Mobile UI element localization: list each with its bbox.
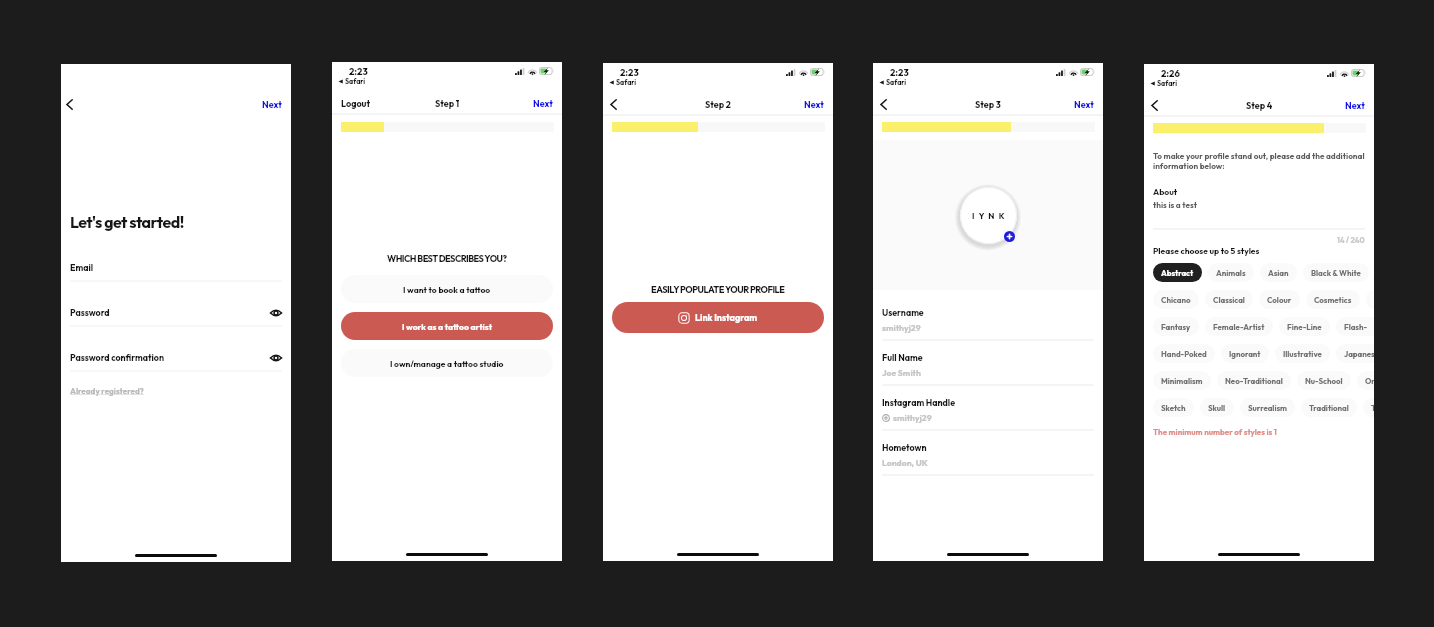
staticText: Japanes xyxy=(1344,349,1374,359)
staticText: this is a test xyxy=(1153,200,1197,210)
staticText: Animals xyxy=(1216,268,1246,278)
button[interactable]: Japanes xyxy=(1336,344,1374,363)
staticText: Safari xyxy=(616,78,637,87)
staticText: About xyxy=(1153,186,1178,197)
button[interactable]: Skull xyxy=(1200,398,1234,417)
button[interactable]: Back xyxy=(1144,97,1162,114)
staticText: Neo-Traditional xyxy=(1225,376,1283,386)
button[interactable]: Illustrative xyxy=(1275,344,1330,363)
staticText: Safari xyxy=(345,77,366,86)
button[interactable]: Flash-Sh xyxy=(1336,317,1374,336)
staticText: Asian xyxy=(1268,268,1289,278)
staticText: Safari xyxy=(886,78,907,87)
button[interactable]: Link Instagram xyxy=(612,302,824,333)
button[interactable]: I work as a tattoo artist xyxy=(341,312,553,340)
staticText: Flash-Sh xyxy=(1344,322,1374,332)
staticText: Nu-School xyxy=(1305,376,1343,386)
button[interactable]: Or xyxy=(1357,371,1374,390)
staticText: Ignorant xyxy=(1229,349,1261,359)
button[interactable]: Asian xyxy=(1260,263,1297,282)
staticText: Or xyxy=(1365,376,1374,386)
button[interactable]: Animals xyxy=(1208,263,1254,282)
button[interactable]: Surrealism xyxy=(1240,398,1295,417)
staticText: Username xyxy=(882,307,924,318)
button[interactable]: Female-Artist xyxy=(1205,317,1273,336)
button[interactable]: Show password xyxy=(270,354,282,362)
button[interactable]: Already registered? xyxy=(70,386,144,396)
button[interactable]: I want to book a tattoo xyxy=(341,275,553,303)
staticText: Minimalism xyxy=(1161,376,1203,386)
staticText: Instagram Handle xyxy=(882,397,955,408)
button[interactable]: Black & White xyxy=(1303,263,1369,282)
button[interactable]: Back xyxy=(603,96,621,113)
button[interactable]: Chicano xyxy=(1153,290,1199,309)
button[interactable]: Fine-Line xyxy=(1279,317,1330,336)
button[interactable]: Change avatar xyxy=(960,187,1017,244)
button[interactable]: Next xyxy=(256,96,291,113)
staticText: 2:23 xyxy=(620,66,639,78)
staticText: Step 3 xyxy=(975,99,1001,110)
button[interactable]: Next xyxy=(1068,96,1103,113)
button[interactable]: Back xyxy=(873,96,891,113)
button[interactable]: Next xyxy=(1339,97,1374,114)
staticText: 14 / 240 xyxy=(1337,235,1365,245)
staticText: Chicano xyxy=(1161,295,1191,305)
staticText: Link Instagram xyxy=(695,312,758,323)
staticText: I own/manage a tattoo studio xyxy=(390,358,504,369)
button[interactable]: Logout xyxy=(332,95,375,112)
button[interactable]: Nu-School xyxy=(1297,371,1351,390)
staticText: Illustrative xyxy=(1283,349,1322,359)
button[interactable]: Minimalism xyxy=(1153,371,1211,390)
button[interactable]: Show password xyxy=(270,309,282,317)
staticText: Password confirmation xyxy=(70,352,270,363)
staticText: Tr xyxy=(1371,403,1374,413)
staticText: smithyj29 xyxy=(893,412,932,423)
button[interactable]: Next xyxy=(798,96,833,113)
button[interactable]: Abstract xyxy=(1153,263,1202,282)
button[interactable]: Sketch xyxy=(1153,398,1194,417)
staticText: Black & White xyxy=(1311,268,1361,278)
staticText: Step 1 xyxy=(435,98,460,109)
staticText: I work as a tattoo artist xyxy=(402,321,493,332)
staticText: Hometown xyxy=(882,442,927,453)
button[interactable]: Fantasy xyxy=(1153,317,1199,336)
button[interactable]: Traditional xyxy=(1301,398,1357,417)
button[interactable]: Back xyxy=(61,96,77,113)
staticText: Fantasy xyxy=(1161,322,1191,332)
staticText: Abstract xyxy=(1161,268,1194,278)
staticText: Traditional xyxy=(1309,403,1349,413)
staticText: To make your profile stand out, please a… xyxy=(1153,151,1374,171)
staticText: 2:26 xyxy=(1161,67,1180,79)
staticText: The minimum number of styles is 1 xyxy=(1153,427,1277,437)
staticText: Step 2 xyxy=(705,99,731,110)
button[interactable]: Cosmetics xyxy=(1306,290,1360,309)
staticText: Full Name xyxy=(882,352,923,363)
button[interactable]: Hand-Poked xyxy=(1153,344,1215,363)
staticText: Sketch xyxy=(1161,403,1186,413)
button[interactable]: Classical xyxy=(1205,290,1253,309)
staticText: Surrealism xyxy=(1248,403,1287,413)
button[interactable]: Colour xyxy=(1259,290,1300,309)
staticText: I want to book a tattoo xyxy=(403,284,491,295)
staticText: Next xyxy=(1345,100,1365,111)
staticText: Classical xyxy=(1213,295,1245,305)
staticText: 2:23 xyxy=(890,66,909,78)
staticText: Let's get started! xyxy=(70,212,184,232)
staticText: IYNK xyxy=(972,211,1009,221)
staticText: WHICH BEST DESCRIBES YOU? xyxy=(387,253,507,265)
button[interactable]: Next xyxy=(527,95,562,112)
staticText: Please choose up to 5 styles xyxy=(1153,245,1260,256)
staticText: Logout xyxy=(341,98,371,109)
staticText: Already registered? xyxy=(70,386,144,396)
staticText: Female-Artist xyxy=(1213,322,1265,332)
staticText: Password xyxy=(70,307,270,318)
staticText: smithyj29 xyxy=(882,322,921,333)
staticText: Fine-Line xyxy=(1287,322,1322,332)
button[interactable]: Ignorant xyxy=(1221,344,1269,363)
staticText: Next xyxy=(804,99,824,110)
button[interactable]: Tr xyxy=(1363,398,1374,417)
staticText: London, UK xyxy=(882,457,928,468)
button[interactable]: Neo-Traditional xyxy=(1217,371,1291,390)
button[interactable]: I own/manage a tattoo studio xyxy=(341,349,553,377)
